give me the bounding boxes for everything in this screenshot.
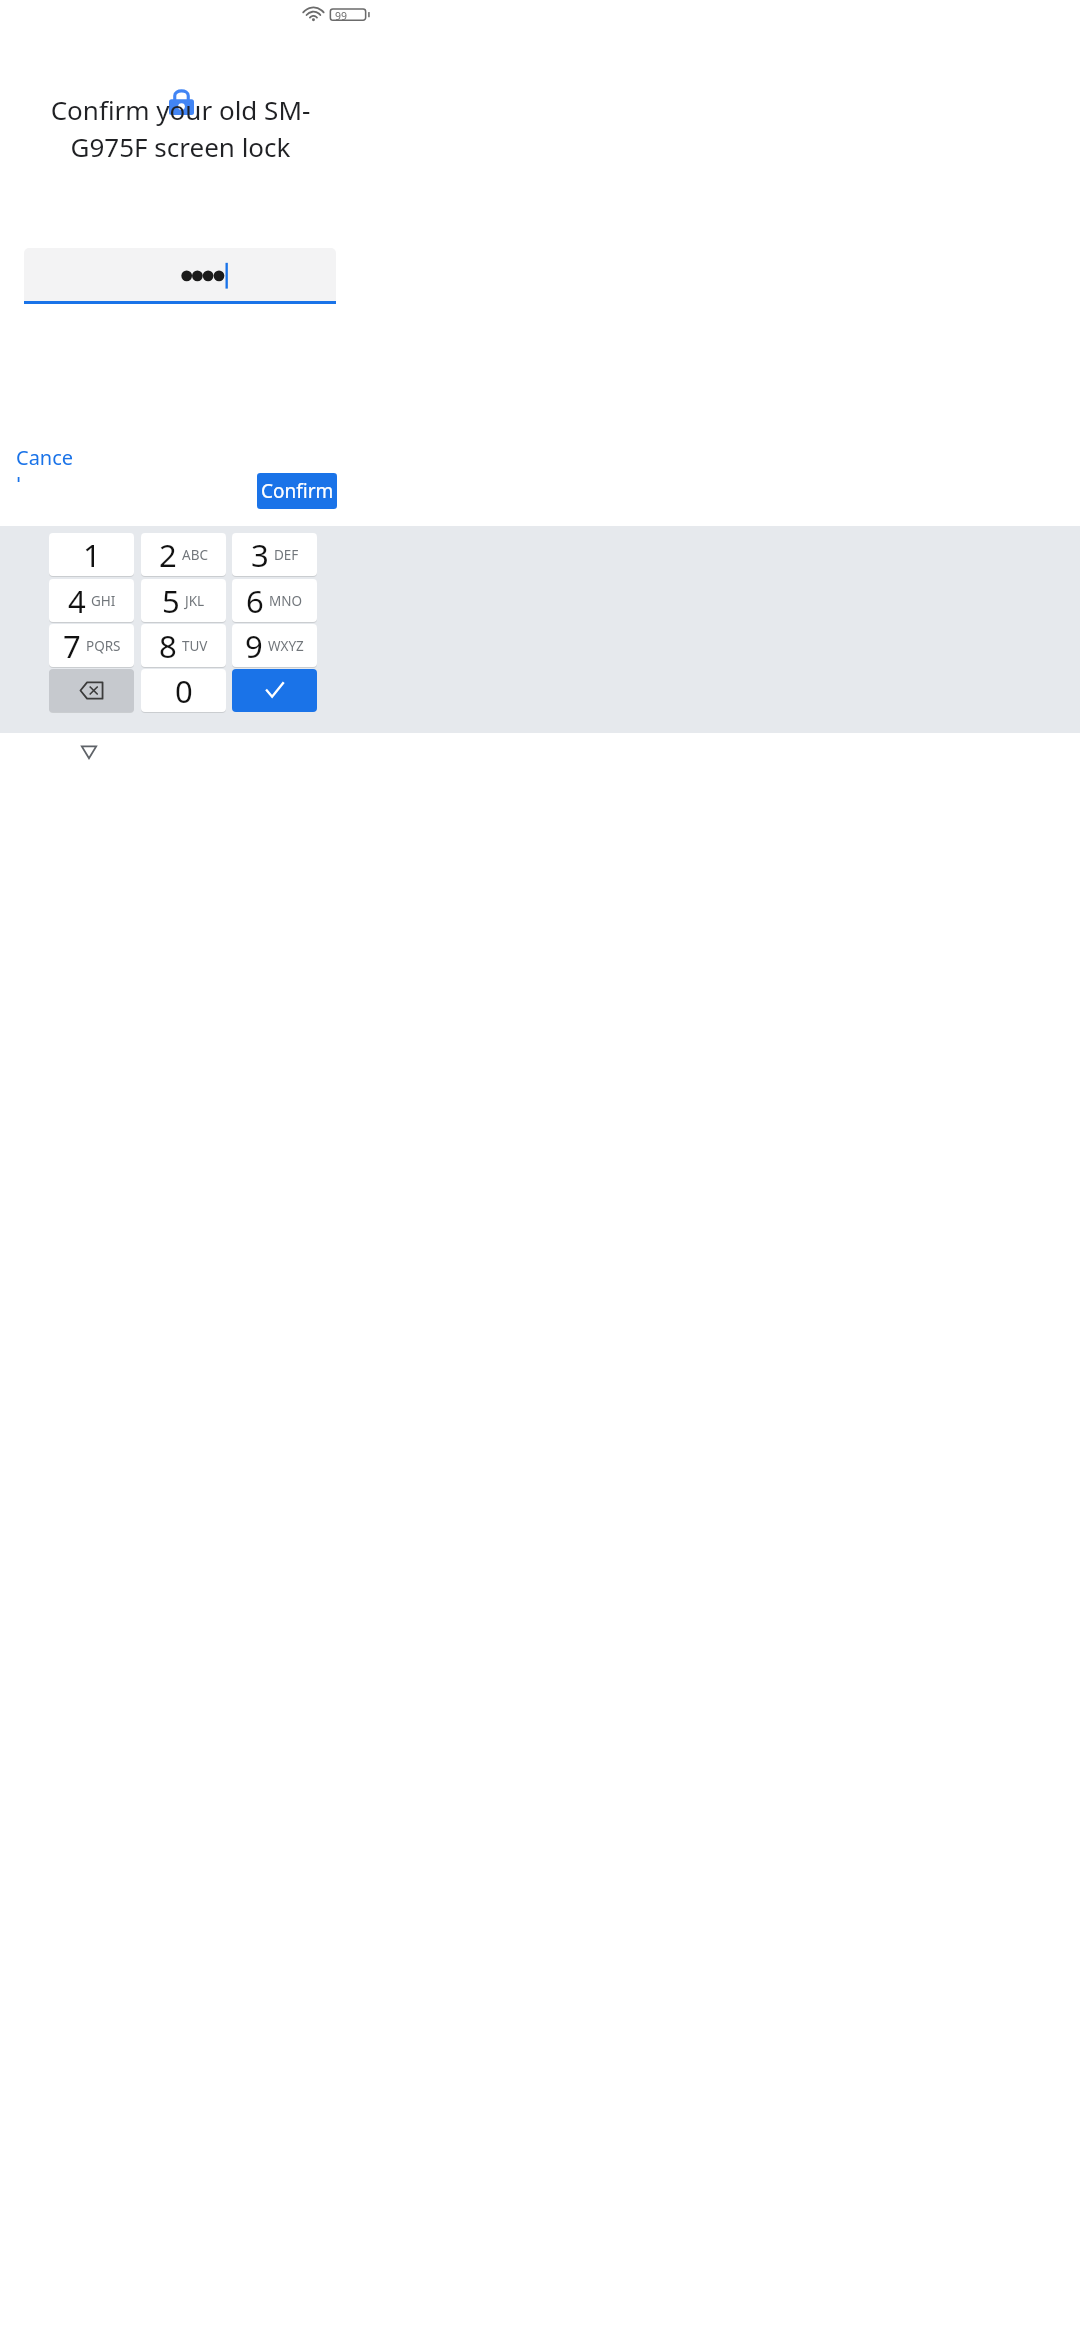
- staticText: 99: [335, 9, 348, 23]
- button[interactable]: 2: [141, 533, 226, 576]
- staticText: Confirm: [261, 478, 334, 504]
- staticText: 9: [245, 625, 263, 667]
- button[interactable]: 9: [232, 624, 317, 667]
- staticText: GHI: [91, 592, 116, 610]
- staticText: 6: [246, 580, 264, 622]
- staticText: Confirm your old SM-G975F screen lock: [21, 92, 340, 165]
- button[interactable]: Delete: [49, 669, 134, 712]
- staticText: ABC: [182, 546, 208, 564]
- staticText: 0: [175, 670, 193, 712]
- button[interactable]: 6: [232, 579, 317, 622]
- button[interactable]: Enter: [232, 669, 317, 712]
- button[interactable]: 1: [49, 533, 134, 576]
- staticText: Cancel: [16, 444, 76, 482]
- button[interactable]: 7: [49, 624, 134, 667]
- staticText: 1: [83, 534, 101, 576]
- staticText: TUV: [182, 637, 208, 655]
- staticText: 5: [162, 580, 180, 622]
- button[interactable]: 4: [49, 579, 134, 622]
- button[interactable]: 0: [141, 669, 226, 712]
- staticText: 7: [63, 625, 81, 667]
- staticText: PQRS: [86, 637, 121, 655]
- button[interactable]: Confirm: [257, 473, 337, 509]
- staticText: WXYZ: [268, 637, 304, 655]
- staticText: 4: [68, 580, 86, 622]
- staticText: 8: [159, 625, 177, 667]
- button[interactable]: 5: [141, 579, 226, 622]
- button[interactable]: [24, 248, 336, 304]
- button[interactable]: Hide keyboard: [81, 745, 97, 759]
- staticText: 2: [159, 534, 177, 576]
- staticText: MNO: [269, 592, 303, 610]
- button[interactable]: Cancel: [11, 444, 71, 482]
- staticText: DEF: [274, 546, 299, 564]
- button[interactable]: 3: [232, 533, 317, 576]
- staticText: 3: [251, 534, 269, 576]
- staticText: JKL: [185, 592, 205, 610]
- button[interactable]: 8: [141, 624, 226, 667]
